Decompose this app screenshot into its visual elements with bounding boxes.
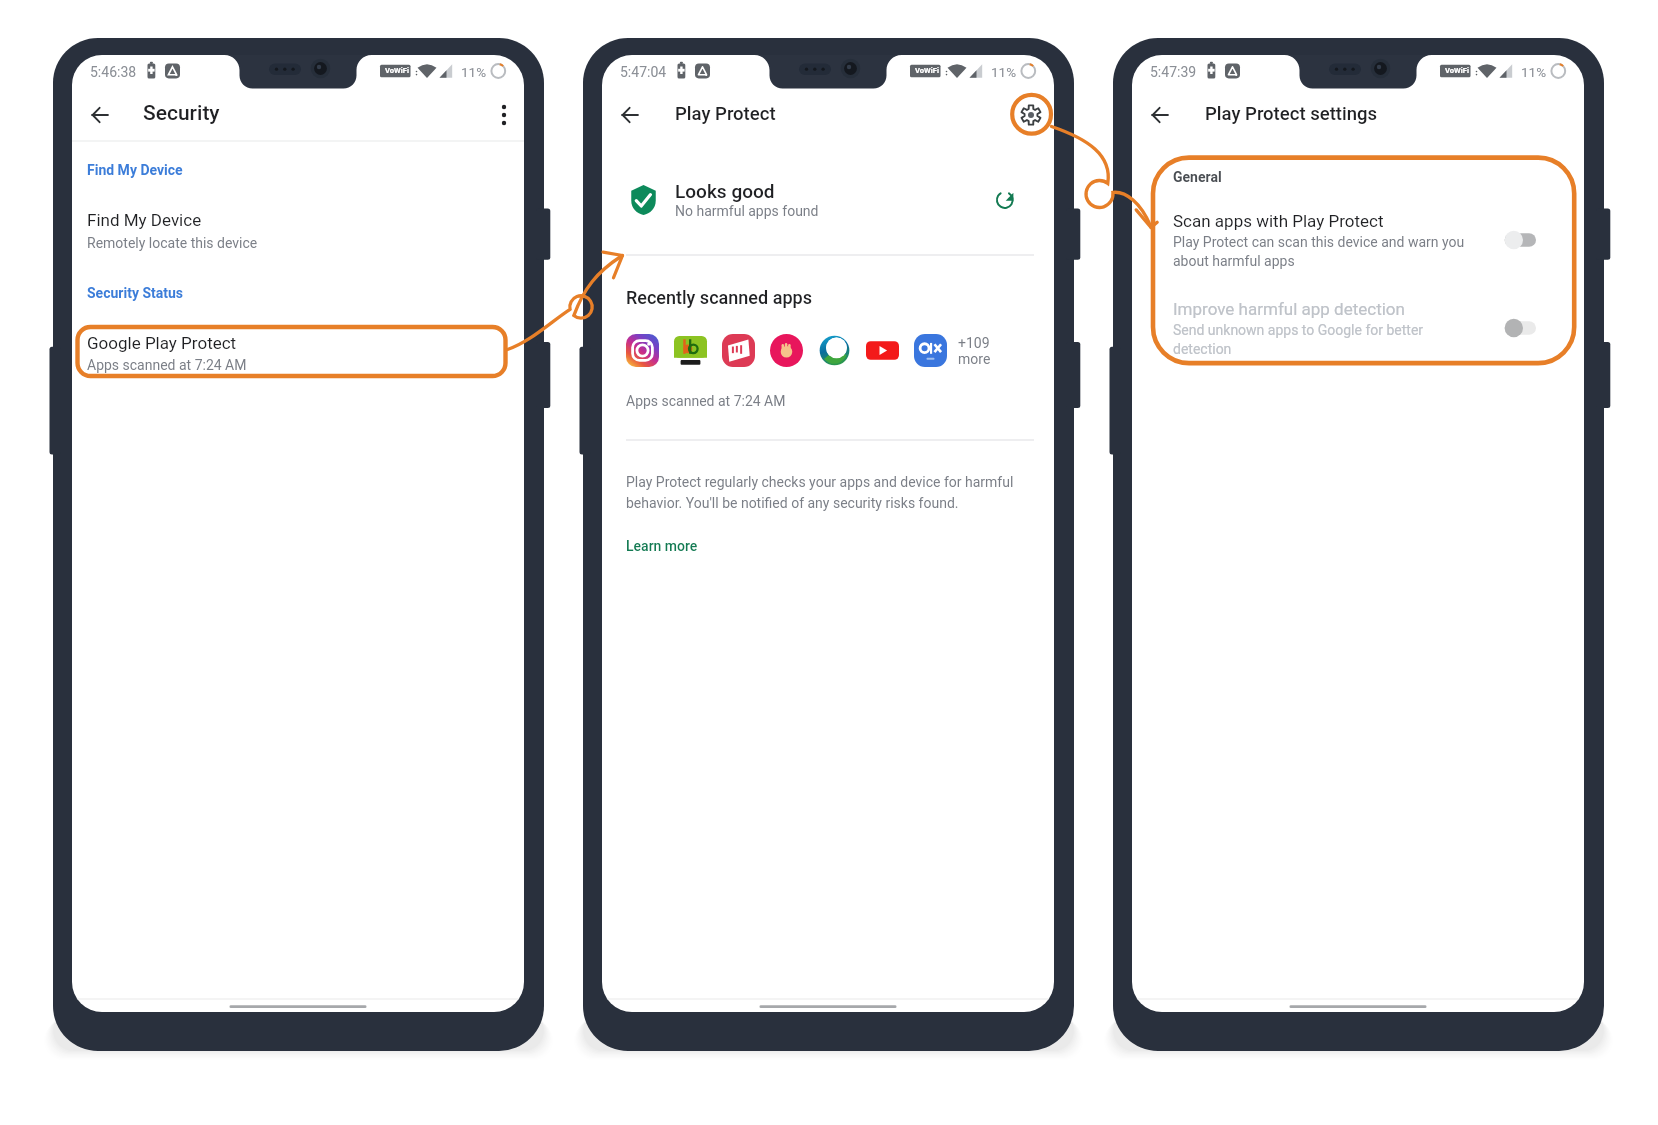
staticText: No harmful apps found — [675, 203, 819, 219]
staticText: Scan apps with Play Protect — [1173, 211, 1384, 231]
button[interactable]: Scan apps with Play Protect — [1132, 211, 1584, 270]
button[interactable]: Looks good — [602, 180, 1054, 219]
button[interactable]: Find My Device — [72, 210, 524, 251]
button[interactable]: Back — [80, 95, 120, 135]
button[interactable]: Learn more — [626, 538, 698, 554]
staticText: Play Protect settings — [1205, 103, 1378, 125]
button[interactable]: Settings — [1011, 95, 1051, 135]
staticText: Google Play Protect — [87, 333, 237, 353]
button[interactable]: More options — [484, 95, 524, 135]
staticText: General — [1173, 169, 1222, 185]
staticText: Security Status — [87, 285, 184, 301]
staticText: Improve harmful app detection — [1173, 299, 1405, 319]
staticText: 5:46:38 — [90, 64, 137, 80]
staticText: +109 — [958, 335, 990, 351]
staticText: 11% — [461, 64, 487, 80]
staticText: Play Protect can scan this device and wa… — [1173, 234, 1469, 270]
staticText: Find My Device — [87, 210, 202, 230]
button[interactable]: Improve harmful app detection — [1132, 299, 1584, 358]
staticText: Send unknown apps to Google for better d… — [1173, 322, 1461, 358]
staticText: VoWiFi — [915, 66, 939, 75]
staticText: Security — [143, 101, 220, 126]
button[interactable]: Rescan — [990, 184, 1022, 216]
staticText: VoWiFi — [1445, 66, 1469, 75]
staticText: Looks good — [675, 180, 775, 202]
staticText: Learn more — [626, 538, 698, 554]
staticText: Remotely locate this device — [87, 235, 258, 251]
staticText: VoWiFi — [385, 66, 409, 75]
staticText: 11% — [1521, 64, 1547, 80]
staticText: Apps scanned at 7:24 AM — [626, 393, 786, 409]
staticText: Find My Device — [87, 162, 183, 178]
staticText: 11% — [991, 64, 1017, 80]
staticText: more — [958, 351, 991, 367]
staticText: 5:47:39 — [1150, 64, 1197, 80]
button[interactable]: Google Play Protect — [72, 333, 524, 373]
button[interactable]: Back — [1140, 95, 1180, 135]
staticText: Apps scanned at 7:24 AM — [87, 357, 247, 373]
staticText: Play Protect regularly checks your apps … — [626, 474, 1021, 511]
button[interactable]: Back — [610, 95, 650, 135]
staticText: Play Protect — [675, 103, 776, 125]
staticText: 5:47:04 — [620, 64, 667, 80]
staticText: Recently scanned apps — [626, 287, 812, 308]
